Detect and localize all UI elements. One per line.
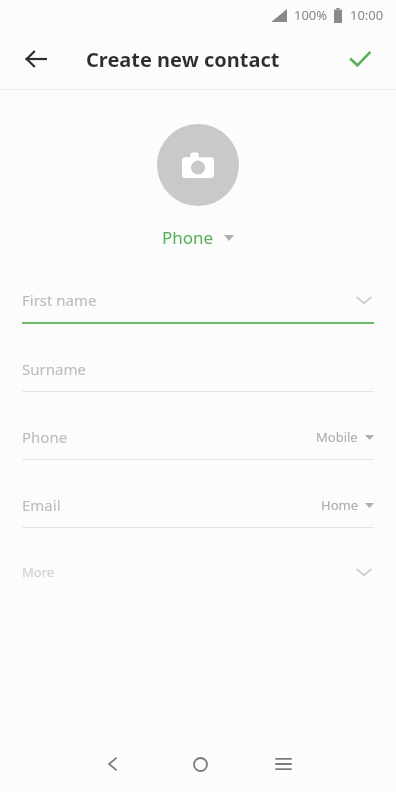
button[interactable]: Surname [0,346,396,414]
staticText: Create new contact [86,46,280,73]
staticText: 10:00 [350,6,384,24]
button[interactable]: First name [0,277,396,346]
button[interactable]: Phone [0,414,396,482]
staticText: First name [22,290,97,310]
staticText: Mobile [316,428,358,446]
staticText: Email [22,495,61,515]
staticText: 100% [294,6,328,24]
button[interactable]: Add photo [157,124,239,206]
staticText: Phone [22,427,68,447]
button[interactable]: Back [14,37,58,81]
button[interactable]: Back [85,736,141,792]
staticText: Phone [162,226,214,249]
button[interactable]: More [0,550,396,594]
button[interactable]: Recent apps [255,736,311,792]
button[interactable]: Save contact [338,37,382,81]
button[interactable]: Phone [156,224,240,251]
button[interactable]: Email [0,482,396,550]
button[interactable]: Home [172,736,228,792]
staticText: More [22,563,55,581]
staticText: Surname [22,359,86,379]
staticText: Home [321,496,358,514]
